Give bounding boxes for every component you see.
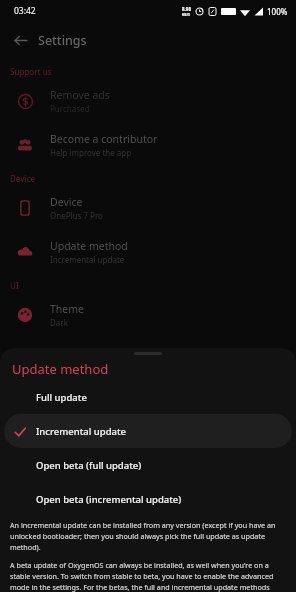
staticText: Support us	[10, 66, 52, 77]
button[interactable]: Back	[10, 30, 30, 50]
button[interactable]: Device	[0, 186, 296, 230]
staticText: Update method	[50, 239, 128, 253]
staticText: Full update	[36, 391, 87, 404]
button[interactable]: Remove ads	[0, 79, 296, 123]
staticText: Settings	[38, 32, 87, 49]
staticText: Purchased	[50, 103, 90, 114]
staticText: 8.98	[182, 6, 191, 12]
staticText: Update method	[12, 360, 109, 378]
staticText: Device	[10, 173, 36, 184]
button[interactable]: Theme	[0, 293, 296, 337]
staticText: Become a contributor	[50, 132, 158, 146]
staticText: Incremental update	[36, 425, 127, 438]
staticText: OnePlus 7 Pro	[50, 210, 103, 221]
staticText: Remove ads	[50, 88, 110, 102]
staticText: KB/S	[182, 12, 191, 17]
staticText: 100%	[267, 6, 288, 17]
staticText: A beta update of OxygenOS can always be …	[10, 560, 286, 592]
button[interactable]: Open beta (full update)	[4, 448, 292, 482]
staticText: An incremental update can be installed f…	[10, 520, 286, 552]
staticText: UI	[10, 280, 19, 291]
staticText: Dark	[50, 317, 68, 328]
staticText: Open beta (incremental update)	[36, 493, 182, 506]
button[interactable]: Update method	[0, 230, 296, 274]
button[interactable]: Open beta (incremental update)	[4, 482, 292, 516]
button[interactable]: Become a contributor	[0, 123, 296, 167]
staticText: Open beta (full update)	[36, 459, 142, 472]
button[interactable]: Incremental update	[4, 414, 292, 448]
staticText: Help improve the app	[50, 147, 132, 158]
button[interactable]: Full update	[4, 380, 292, 414]
staticText: 03:42	[14, 5, 36, 17]
staticText: Device	[50, 195, 83, 209]
staticText: Incremental update	[50, 254, 125, 265]
staticText: Theme	[50, 302, 84, 316]
